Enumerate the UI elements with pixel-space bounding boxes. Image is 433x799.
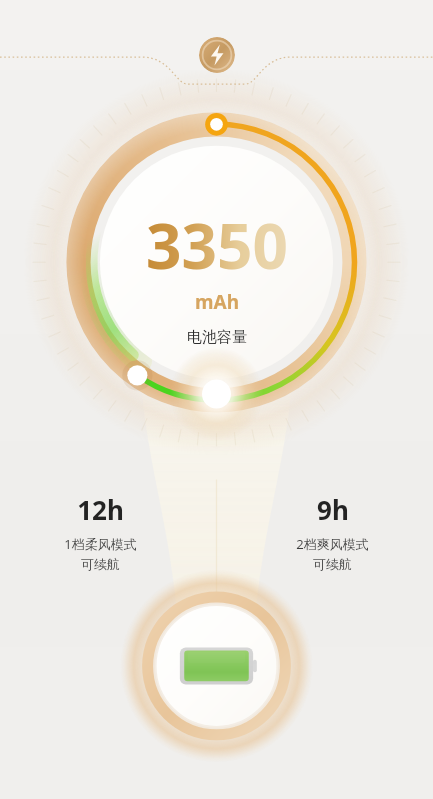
button[interactable]: 12h	[13, 492, 188, 572]
button[interactable]: Charging	[199, 37, 235, 73]
button[interactable]: 3350	[146, 203, 288, 347]
button[interactable]: 9h	[245, 492, 420, 572]
staticText: 3350	[146, 203, 288, 287]
staticText: 可续航	[81, 556, 120, 572]
staticText: 2档爽风模式	[296, 535, 369, 553]
staticText: 可续航	[313, 556, 352, 572]
staticText: 9h	[317, 492, 349, 527]
staticText: mAh	[195, 289, 240, 315]
staticText: 1档柔风模式	[64, 535, 137, 553]
button[interactable]: Battery	[139, 592, 295, 748]
staticText: 电池容量	[187, 328, 247, 347]
staticText: 12h	[77, 492, 124, 527]
